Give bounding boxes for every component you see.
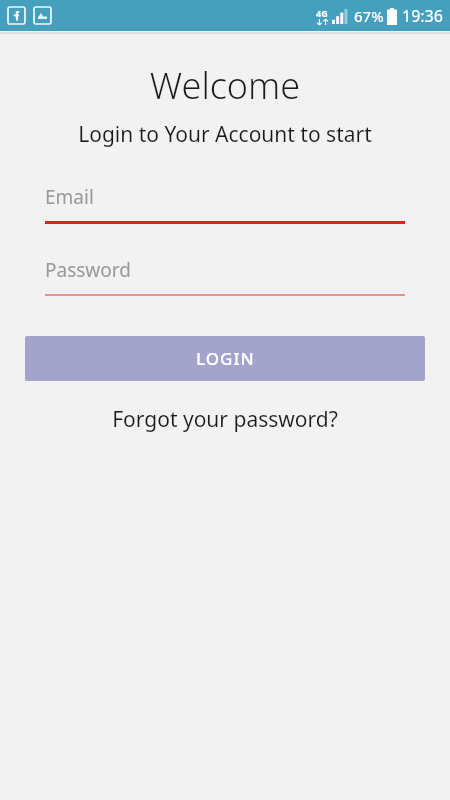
button[interactable]: Forgot your password?	[0, 405, 450, 434]
button[interactable]: LOGIN	[25, 336, 425, 381]
staticText: Password	[45, 257, 131, 283]
staticText: Forgot your password?	[112, 405, 338, 434]
staticText: 19:36	[402, 5, 443, 27]
staticText: 67%	[354, 6, 384, 26]
staticText: 4G	[316, 7, 328, 19]
button[interactable]: Email input field	[45, 181, 405, 224]
button[interactable]: Password input field	[45, 254, 405, 296]
staticText: Email	[45, 184, 94, 210]
staticText: Login to Your Account to start	[0, 120, 450, 149]
staticText: Welcome	[0, 61, 450, 110]
staticText: LOGIN	[196, 347, 255, 370]
